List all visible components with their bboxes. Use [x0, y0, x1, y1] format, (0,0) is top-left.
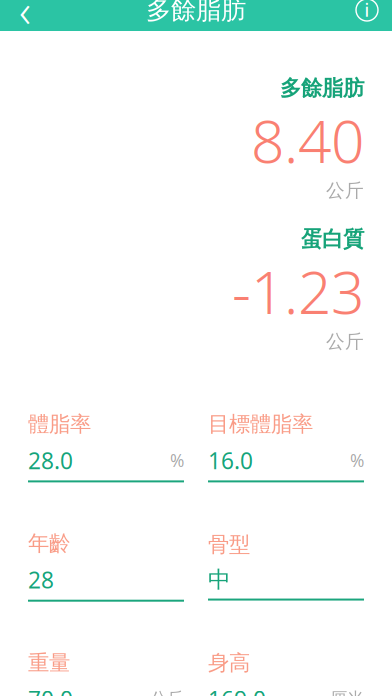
staticText: 28 [28, 565, 54, 595]
staticText: % [170, 449, 184, 472]
staticText: 年齡 [28, 530, 70, 557]
staticText: 厘米 [330, 688, 364, 696]
staticText: 多餘脂肪 [146, 0, 246, 25]
button[interactable]: 骨型 [208, 531, 364, 600]
button[interactable]: Information [342, 0, 392, 31]
staticText: 28.0 [28, 445, 73, 475]
staticText: 16.0 [208, 445, 253, 475]
staticText: 重量 [28, 650, 70, 676]
staticText: i [364, 0, 369, 21]
staticText: -1.23 [232, 252, 364, 330]
staticText: 中 [208, 566, 231, 593]
staticText: 70.0 [28, 684, 73, 696]
staticText: 公斤 [150, 688, 184, 696]
button[interactable]: 體脂率 [28, 411, 184, 482]
staticText: 體脂率 [28, 411, 91, 437]
staticText: 骨型 [208, 531, 250, 558]
staticText: 身高 [208, 650, 250, 676]
staticText: 8.40 [251, 101, 364, 179]
staticText: % [350, 449, 364, 472]
staticText: 169.0 [208, 684, 266, 696]
staticText: 公斤 [326, 179, 364, 202]
staticText: 多餘脂肪 [280, 75, 364, 101]
button[interactable]: 目標體脂率 [208, 411, 364, 482]
button[interactable]: 身高 [208, 650, 364, 696]
staticText: 公斤 [326, 330, 364, 353]
staticText: 目標體脂率 [208, 411, 313, 437]
button[interactable]: 重量 [28, 650, 184, 696]
button[interactable]: Back [0, 0, 50, 31]
staticText: 蛋白質 [301, 226, 364, 252]
staticText: ‹ [19, 0, 31, 40]
button[interactable]: 年齡 [28, 530, 184, 602]
